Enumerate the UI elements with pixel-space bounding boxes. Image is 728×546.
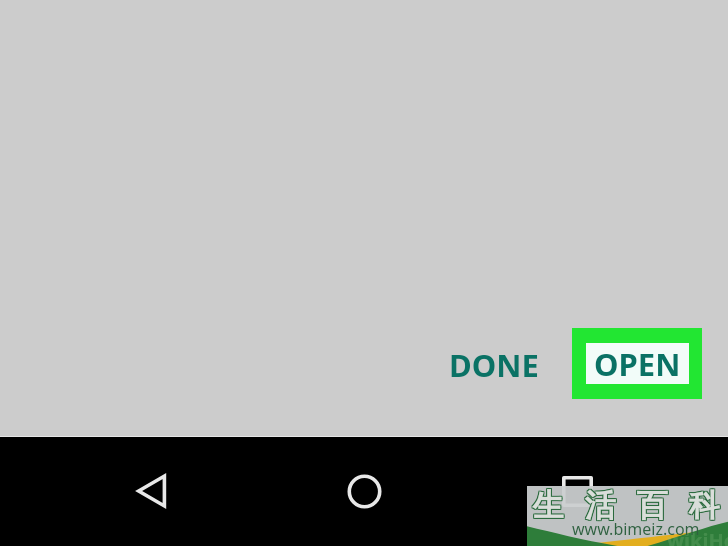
staticText: 生活百科 xyxy=(523,486,728,525)
button[interactable]: OPEN xyxy=(572,328,702,399)
staticText: 生活百科 xyxy=(521,485,728,524)
staticText: 生活百科 xyxy=(523,487,728,526)
button[interactable]: Back xyxy=(132,473,168,509)
button[interactable]: Recent apps xyxy=(562,476,593,507)
button[interactable]: Home xyxy=(347,474,382,509)
staticText: 生活百科 xyxy=(521,486,728,525)
staticText: www.bimeiz.com xyxy=(572,518,700,540)
staticText: 生活百科 xyxy=(521,487,728,526)
staticText: 生活百科 xyxy=(523,485,728,524)
staticText: DONE xyxy=(449,344,539,386)
button[interactable]: DONE xyxy=(438,339,550,391)
staticText: OPEN xyxy=(594,343,681,384)
staticText: 生活百科 xyxy=(522,487,728,526)
staticText: 生活百科 xyxy=(522,485,728,524)
staticText: 生活百科 xyxy=(522,486,728,525)
staticText: wikiHow xyxy=(667,527,728,546)
